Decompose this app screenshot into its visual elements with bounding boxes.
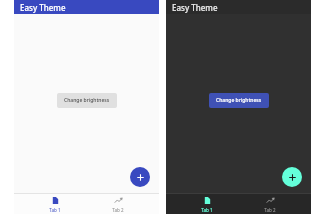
button[interactable]: Change brightness: [209, 93, 269, 108]
button[interactable]: Change brightness: [57, 93, 117, 108]
staticText: Change brightness: [64, 97, 110, 104]
staticText: Change brightness: [216, 97, 262, 104]
staticText: Easy Theme: [172, 2, 218, 13]
button[interactable]: Tab 1: [32, 193, 78, 214]
staticText: Tab 2: [112, 207, 124, 213]
staticText: Easy Theme: [20, 2, 66, 13]
button[interactable]: Tab 2: [247, 193, 293, 214]
button[interactable]: Add: [282, 167, 302, 187]
staticText: Tab 2: [264, 207, 276, 213]
staticText: Tab 1: [201, 207, 213, 213]
button[interactable]: Tab 2: [95, 193, 141, 214]
staticText: Tab 1: [49, 207, 61, 213]
button[interactable]: Tab 1: [184, 193, 230, 214]
button[interactable]: Add: [130, 167, 150, 187]
